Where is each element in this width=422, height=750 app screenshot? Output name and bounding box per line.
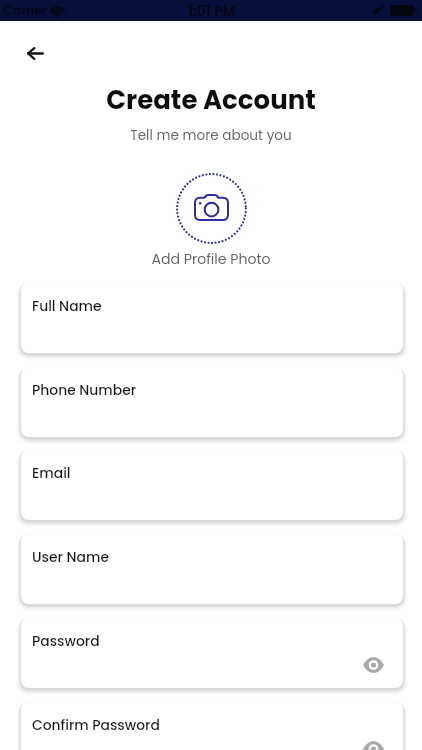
staticText: Tell me more about you — [0, 126, 422, 145]
button[interactable]: Password — [21, 618, 403, 688]
staticText: 1:01 PM — [188, 1, 236, 21]
staticText: User Name — [32, 547, 109, 566]
staticText: Full Name — [32, 296, 102, 315]
button[interactable]: Back — [18, 36, 53, 71]
staticText: Carrier — [3, 2, 47, 19]
staticText: Create Account — [0, 82, 422, 118]
button[interactable]: Add Profile Photo — [171, 168, 251, 248]
button[interactable]: Confirm Password — [21, 702, 403, 750]
button[interactable]: User Name — [21, 534, 403, 604]
button[interactable]: Full Name — [21, 283, 403, 353]
staticText: Password — [32, 631, 100, 650]
button[interactable]: Email — [21, 450, 403, 520]
staticText: Email — [32, 463, 71, 482]
staticText: Confirm Password — [32, 715, 160, 734]
staticText: Add Profile Photo — [0, 249, 422, 269]
button[interactable]: Show password — [360, 736, 386, 750]
staticText: Phone Number — [32, 380, 137, 399]
button[interactable]: Show password — [360, 652, 386, 678]
button[interactable]: Phone Number — [21, 367, 403, 437]
